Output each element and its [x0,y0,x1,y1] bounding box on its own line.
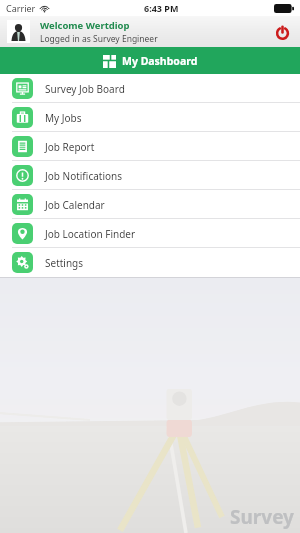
staticText: Job Notifications [45,169,123,183]
button[interactable]: Job Notifications [0,161,300,190]
button[interactable]: Survey Job Board [0,74,300,103]
staticText: Carrier [6,2,36,14]
staticText: Survey Job Board [45,82,125,96]
button[interactable]: Job Calendar [0,190,300,219]
button[interactable]: Profile photo [7,20,30,43]
staticText: My Dashboard [122,54,198,68]
staticText: Welcome Wertdiop [40,19,130,32]
staticText: Survey [230,504,294,530]
staticText: Settings [45,256,84,270]
button[interactable]: My Jobs [0,103,300,132]
staticText: Job Report [45,140,95,154]
staticText: Logged in as Survey Engineer [40,33,158,45]
button[interactable]: Log out [271,21,293,43]
button[interactable]: Settings [0,248,300,277]
button[interactable]: My Dashboard [0,47,300,74]
staticText: 6:43 PM [144,2,179,14]
button[interactable]: Job Report [0,132,300,161]
staticText: Job Calendar [45,198,105,212]
staticText: My Jobs [45,111,82,125]
staticText: Job Location Finder [45,227,136,241]
button[interactable]: Job Location Finder [0,219,300,248]
